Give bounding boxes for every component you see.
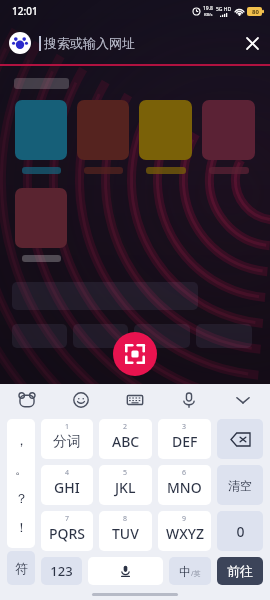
button[interactable]: 6	[158, 465, 211, 505]
staticText: 12:01	[12, 4, 38, 18]
staticText: 4	[65, 468, 70, 478]
button[interactable]: 2	[99, 419, 152, 459]
button[interactable]: Emoji	[54, 384, 108, 416]
staticText: 123	[50, 562, 73, 580]
button[interactable]: Hide keyboard	[216, 384, 270, 416]
staticText: 。	[15, 461, 28, 477]
button[interactable]: 3	[158, 419, 211, 459]
button[interactable]: 123	[41, 557, 82, 585]
button[interactable]: Baidu input	[0, 384, 54, 416]
button[interactable]: 4	[41, 465, 93, 505]
button[interactable]: 搜索或输入网址	[0, 22, 270, 64]
staticText: 2	[123, 422, 128, 432]
button[interactable]: 符	[7, 551, 35, 585]
staticText: 分词	[53, 433, 81, 451]
staticText: ？	[15, 490, 28, 506]
staticText: 80	[252, 8, 259, 16]
button[interactable]: ，	[7, 419, 35, 548]
staticText: DEF	[172, 432, 198, 451]
button[interactable]: Keyboard layout	[108, 384, 162, 416]
staticText: WXYZ	[166, 524, 204, 543]
staticText: 8	[123, 514, 128, 524]
button[interactable]: 清空	[217, 465, 263, 505]
staticText: 符	[15, 560, 28, 576]
staticText: TUV	[112, 524, 139, 543]
staticText: 9	[182, 514, 187, 524]
staticText: KB/s	[204, 12, 213, 17]
staticText: 19.8	[203, 5, 213, 12]
button[interactable]: 9	[158, 511, 211, 551]
staticText: /英	[191, 569, 201, 579]
staticText: JKL	[115, 478, 136, 497]
staticText: 0	[236, 522, 245, 541]
staticText: 5	[123, 468, 128, 478]
staticText: 3	[182, 422, 187, 432]
staticText: 7	[65, 514, 70, 524]
staticText: PQRS	[49, 524, 86, 543]
staticText: ABC	[112, 432, 140, 451]
staticText: 中	[179, 564, 191, 579]
button[interactable]: 中	[169, 557, 211, 585]
button[interactable]: 0	[217, 511, 263, 551]
button[interactable]: Scan QR code	[113, 332, 157, 376]
button[interactable]: 前往	[217, 557, 263, 585]
staticText: 搜索或输入网址	[44, 35, 135, 51]
button[interactable]: 5	[99, 465, 152, 505]
button[interactable]: 1	[41, 419, 93, 459]
button[interactable]: 7	[41, 511, 93, 551]
button[interactable]: Voice input	[162, 384, 216, 416]
staticText: MNO	[167, 478, 202, 497]
button[interactable]: Backspace	[217, 419, 263, 459]
button[interactable]: Space, voice input	[88, 557, 163, 585]
staticText: ，	[15, 432, 28, 448]
staticText: ！	[15, 519, 28, 535]
staticText: 前往	[227, 563, 253, 579]
staticText: 1	[65, 422, 70, 432]
staticText: 清空	[228, 478, 252, 493]
staticText: 6	[182, 468, 187, 478]
staticText: GHI	[54, 478, 80, 497]
staticText: 5G HD	[216, 6, 232, 13]
button[interactable]: Close	[234, 25, 270, 61]
button[interactable]: 8	[99, 511, 152, 551]
